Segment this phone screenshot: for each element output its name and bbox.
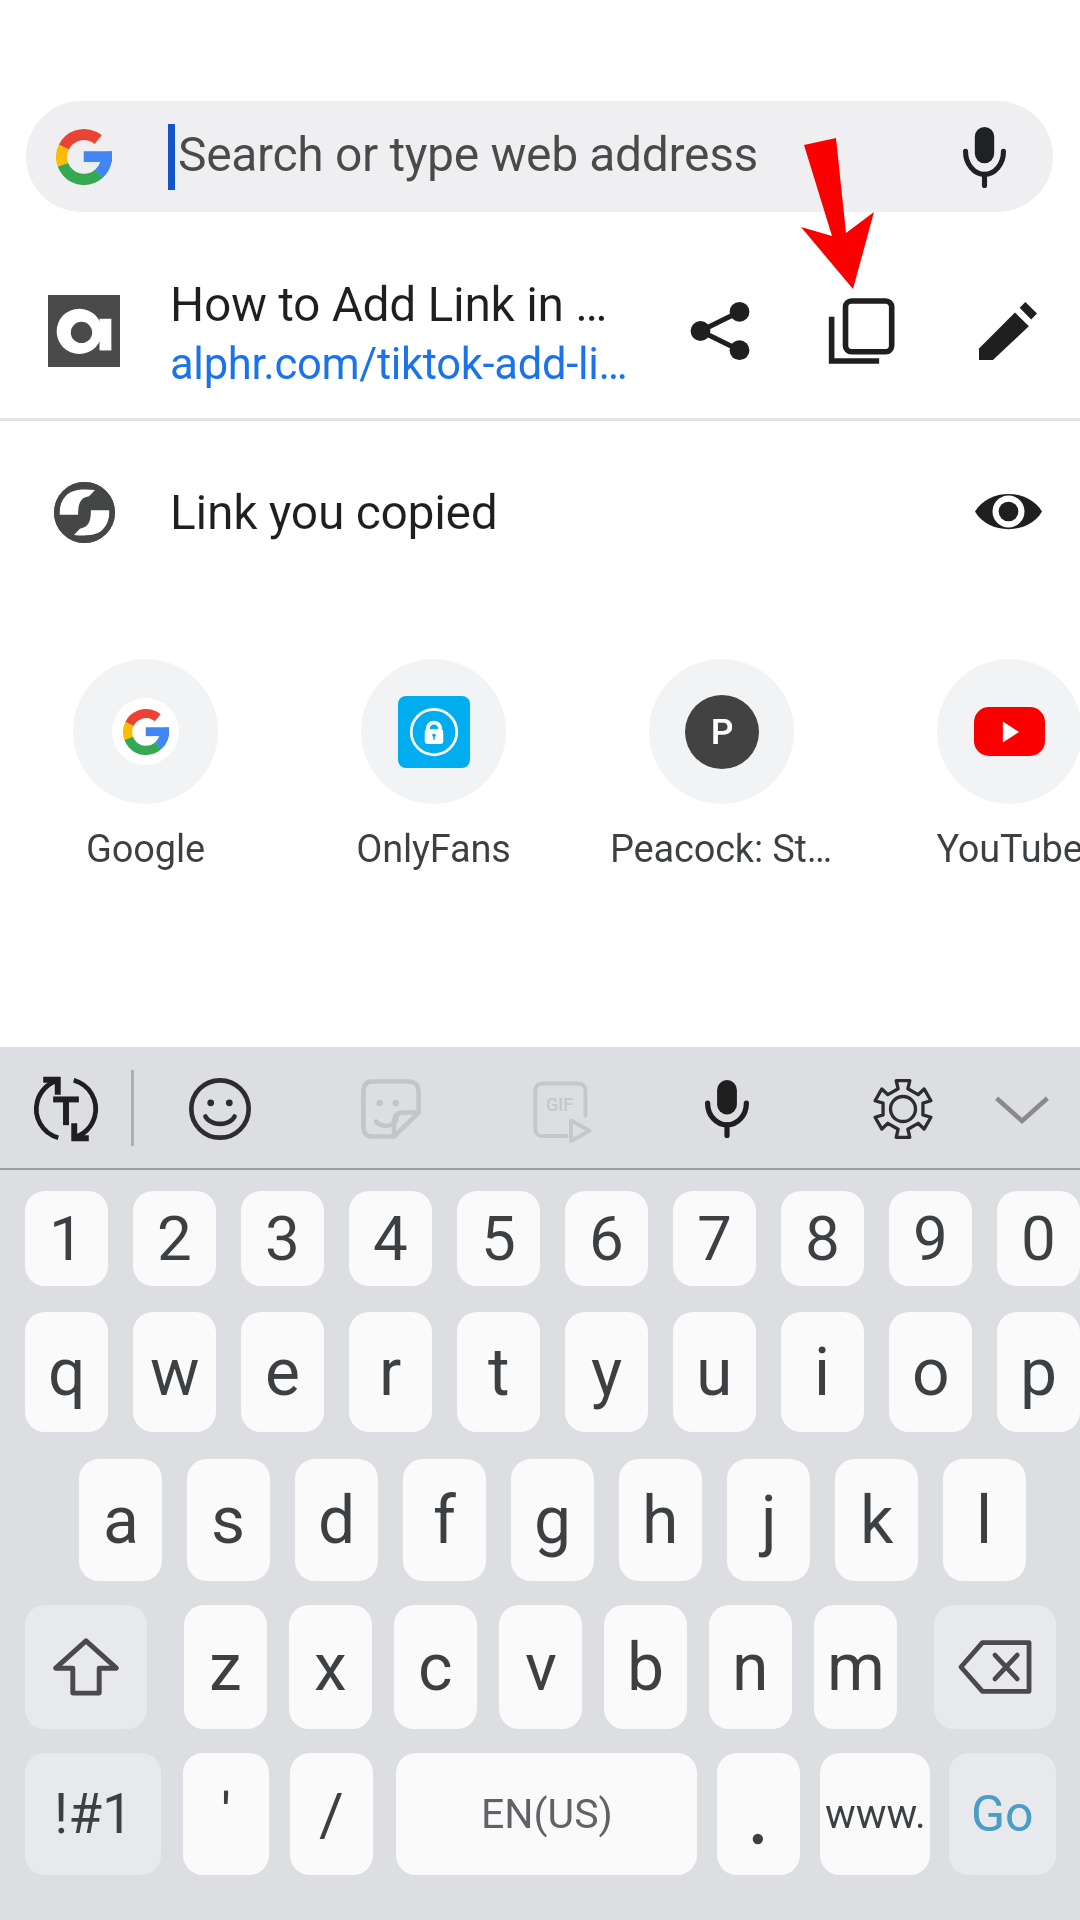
staticText: OnlyFans (356, 827, 511, 872)
button[interactable]: 7 (673, 1191, 756, 1286)
staticText: i (814, 1334, 831, 1411)
button[interactable]: 3 (241, 1191, 324, 1286)
button[interactable]: a (79, 1459, 162, 1581)
button[interactable]: Link you copied (0, 451, 1080, 573)
button[interactable]: n (709, 1605, 792, 1729)
button[interactable]: f (403, 1459, 486, 1581)
button[interactable]: Copy (822, 291, 902, 371)
button[interactable]: 4 (349, 1191, 432, 1286)
staticText: q (48, 1334, 86, 1411)
staticText: b (627, 1629, 665, 1706)
button[interactable]: d (295, 1459, 378, 1581)
button[interactable]: 6 (565, 1191, 648, 1286)
button[interactable]: Voice input (682, 1057, 786, 1161)
staticText: s (211, 1482, 246, 1559)
button[interactable]: y (565, 1312, 648, 1432)
button[interactable]: Edit (968, 291, 1048, 371)
button[interactable]: Go (949, 1753, 1056, 1875)
button[interactable]: q (25, 1312, 108, 1432)
button[interactable]: o (889, 1312, 972, 1432)
staticText: alphr.com/tiktok-add-li… (170, 339, 628, 390)
button[interactable]: z (184, 1605, 267, 1729)
button[interactable]: Show (968, 471, 1048, 551)
button[interactable]: g (511, 1459, 594, 1581)
button[interactable]: m (814, 1605, 897, 1729)
staticText: How to Add Link in … (170, 276, 607, 332)
button[interactable]: P (577, 659, 865, 872)
button[interactable]: Translate (14, 1057, 118, 1161)
button[interactable]: s (187, 1459, 270, 1581)
button[interactable]: YouTube (865, 659, 1080, 872)
staticText: c (418, 1629, 453, 1706)
staticText: n (732, 1629, 769, 1706)
button[interactable]: Stickers (339, 1057, 443, 1161)
button[interactable]: Hide keyboard (970, 1057, 1074, 1161)
staticText: r (379, 1334, 402, 1411)
button[interactable]: 2 (133, 1191, 216, 1286)
staticText: www. (825, 1790, 926, 1838)
button[interactable]: 1 (25, 1191, 108, 1286)
button[interactable]: i (781, 1312, 864, 1432)
staticText: 8 (805, 1202, 840, 1275)
button[interactable]: Search or type web address (26, 101, 1053, 212)
button[interactable]: Emoji (168, 1057, 272, 1161)
staticText: p (1020, 1334, 1058, 1411)
staticText: Peacock: St… (610, 827, 832, 872)
staticText: u (696, 1334, 733, 1411)
button[interactable]: l (943, 1459, 1026, 1581)
button[interactable]: x (289, 1605, 372, 1729)
staticText: j (761, 1482, 777, 1559)
staticText: z (209, 1629, 242, 1706)
button[interactable]: w (133, 1312, 216, 1432)
staticText: GIF (546, 1094, 574, 1115)
button[interactable]: EN(US) (396, 1753, 697, 1875)
button[interactable]: !#1 (25, 1753, 161, 1875)
button[interactable]: Google (1, 659, 289, 872)
button[interactable]: k (835, 1459, 918, 1581)
button[interactable]: Backspace (934, 1605, 1056, 1729)
staticText: h (642, 1482, 679, 1559)
staticText: f (433, 1482, 456, 1559)
button[interactable]: Period (717, 1753, 800, 1875)
button[interactable]: e (241, 1312, 324, 1432)
button[interactable]: h (619, 1459, 702, 1581)
button[interactable]: c (394, 1605, 477, 1729)
button[interactable]: b (604, 1605, 687, 1729)
staticText: 5 (481, 1202, 516, 1275)
staticText: 3 (265, 1202, 300, 1275)
button[interactable]: GIF (510, 1057, 614, 1161)
button[interactable]: Share (680, 291, 760, 371)
button[interactable]: 5 (457, 1191, 540, 1286)
staticText: / (319, 1779, 344, 1849)
button[interactable]: www. (820, 1753, 930, 1875)
button[interactable]: OnlyFans (289, 659, 577, 872)
staticText: x (314, 1629, 347, 1706)
staticText: P (711, 712, 734, 753)
button[interactable]: 8 (781, 1191, 864, 1286)
button[interactable]: u (673, 1312, 756, 1432)
staticText: m (827, 1629, 885, 1706)
staticText: YouTube (936, 827, 1080, 872)
button[interactable]: p (997, 1312, 1080, 1432)
button[interactable]: j (727, 1459, 810, 1581)
staticText: EN(US) (481, 1790, 613, 1838)
staticText: 2 (157, 1202, 192, 1275)
staticText: Go (971, 1785, 1034, 1844)
button[interactable]: ' (183, 1753, 269, 1875)
button[interactable]: How to Add Link in … (0, 266, 1080, 396)
button[interactable]: v (499, 1605, 582, 1729)
button[interactable]: 0 (997, 1191, 1080, 1286)
button[interactable]: 9 (889, 1191, 972, 1286)
staticText: g (534, 1482, 572, 1559)
button[interactable]: t (457, 1312, 540, 1432)
button[interactable]: Shift (25, 1605, 147, 1729)
button[interactable]: Settings (851, 1057, 955, 1161)
staticText: w (150, 1334, 200, 1411)
button[interactable]: Voice search (944, 117, 1024, 197)
staticText: d (318, 1482, 356, 1559)
button[interactable]: r (349, 1312, 432, 1432)
staticText: 9 (913, 1202, 948, 1275)
staticText: t (488, 1334, 510, 1411)
staticText: k (860, 1482, 894, 1559)
button[interactable]: / (290, 1753, 373, 1875)
